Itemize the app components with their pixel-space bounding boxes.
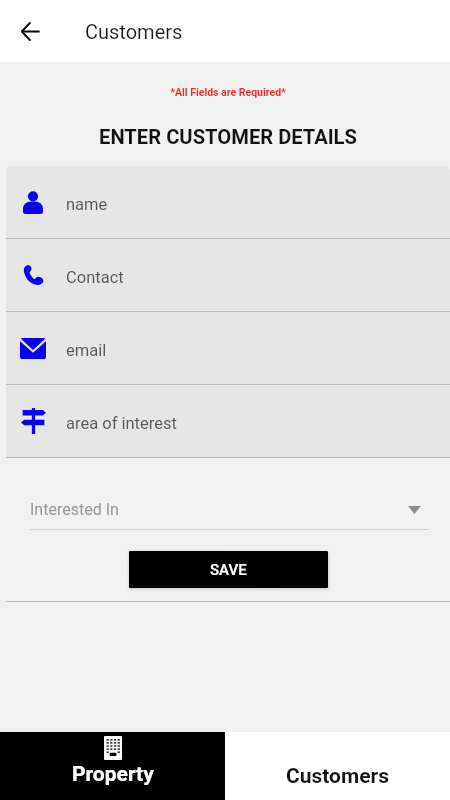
staticText: area of interest bbox=[66, 414, 177, 433]
button[interactable]: name bbox=[6, 166, 450, 238]
staticText: Interested In bbox=[30, 500, 119, 519]
button[interactable]: SAVE bbox=[129, 551, 328, 588]
staticText: Customers bbox=[85, 20, 183, 43]
staticText: SAVE bbox=[210, 561, 247, 579]
button[interactable]: area of interest bbox=[6, 385, 450, 457]
button[interactable]: Back bbox=[8, 9, 52, 53]
staticText: name bbox=[66, 195, 108, 214]
button[interactable]: Interested In bbox=[30, 494, 428, 530]
staticText: email bbox=[66, 341, 107, 360]
staticText: Customers bbox=[286, 764, 389, 789]
button[interactable]: email bbox=[6, 312, 450, 384]
staticText: Property bbox=[72, 762, 154, 787]
staticText: ENTER CUSTOMER DETAILS bbox=[6, 125, 450, 149]
button[interactable]: Customers bbox=[225, 732, 450, 800]
button[interactable]: Contact bbox=[6, 239, 450, 311]
staticText: *All Fields are Required* bbox=[6, 86, 450, 98]
staticText: Contact bbox=[66, 268, 124, 287]
button[interactable]: Property bbox=[0, 732, 225, 800]
